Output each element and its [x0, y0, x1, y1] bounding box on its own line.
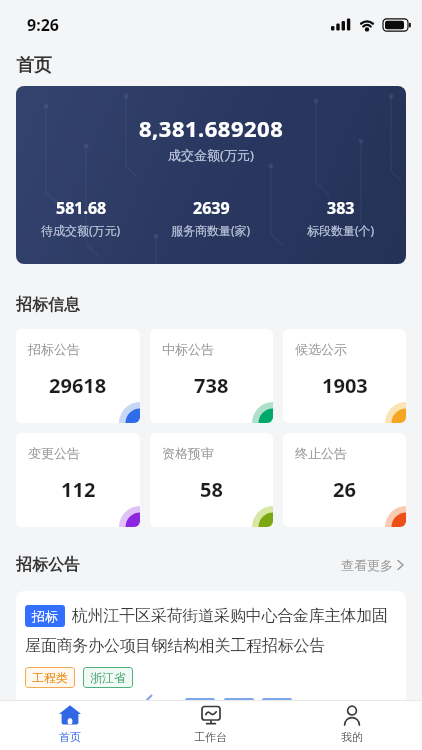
button[interactable]: 招标公告 — [16, 329, 140, 423]
button[interactable]: 首页 — [0, 701, 140, 750]
button[interactable]: 我的 — [281, 701, 422, 750]
staticText: 招标公告 — [28, 341, 80, 357]
staticText: 738 — [194, 372, 229, 399]
staticText: 8,381.689208 — [139, 113, 284, 143]
staticText: 58 — [200, 476, 223, 503]
button[interactable]: 招标 — [16, 591, 406, 750]
button[interactable]: 终止公告 — [283, 433, 406, 527]
button[interactable]: 查看更多 — [341, 557, 406, 573]
staticText: 服务商数量(家) — [171, 222, 251, 238]
staticText: 招标公告 — [16, 555, 80, 575]
staticText: 候选公示 — [295, 341, 347, 357]
staticText: 我的 — [341, 730, 363, 744]
staticText: 26 — [333, 476, 356, 503]
staticText: 581.68 — [56, 197, 107, 219]
button[interactable]: 工作台 — [140, 701, 281, 750]
staticText: 查看更多 — [341, 557, 393, 573]
button[interactable]: 候选公示 — [283, 329, 406, 423]
staticText: 首页 — [59, 730, 81, 744]
staticText: 资格预审 — [162, 445, 214, 461]
staticText: 383 — [327, 197, 355, 219]
staticText: 待成交额(万元) — [41, 222, 121, 238]
staticText: 29618 — [49, 372, 107, 399]
staticText: 浙江省 — [90, 670, 126, 685]
button[interactable]: 变更公告 — [16, 433, 140, 527]
staticText: 招标 — [32, 608, 58, 624]
staticText: 1903 — [322, 372, 368, 399]
staticText: 首页 — [16, 54, 52, 77]
staticText: 9:26 — [27, 14, 59, 36]
staticText: 工程类 — [32, 670, 68, 685]
staticText: 工作台 — [194, 730, 227, 744]
staticText: 终止公告 — [295, 445, 347, 461]
staticText: 变更公告 — [28, 445, 80, 461]
staticText: 招标信息 — [16, 295, 80, 315]
staticText: 成交金额(万元) — [168, 146, 254, 164]
staticText: 屋面商务办公项目钢结构相关工程招标公告 — [25, 636, 326, 656]
staticText: 中标公告 — [162, 341, 214, 357]
button[interactable]: 资格预审 — [150, 433, 273, 527]
staticText: 杭州江干区采荷街道采购中心合金库主体加固 — [72, 606, 388, 626]
button[interactable]: 中标公告 — [150, 329, 273, 423]
staticText: 112 — [61, 476, 96, 503]
staticText: 2639 — [193, 197, 230, 219]
button[interactable]: 8,381.689208 — [16, 86, 406, 264]
staticText: 标段数量(个) — [307, 222, 375, 238]
